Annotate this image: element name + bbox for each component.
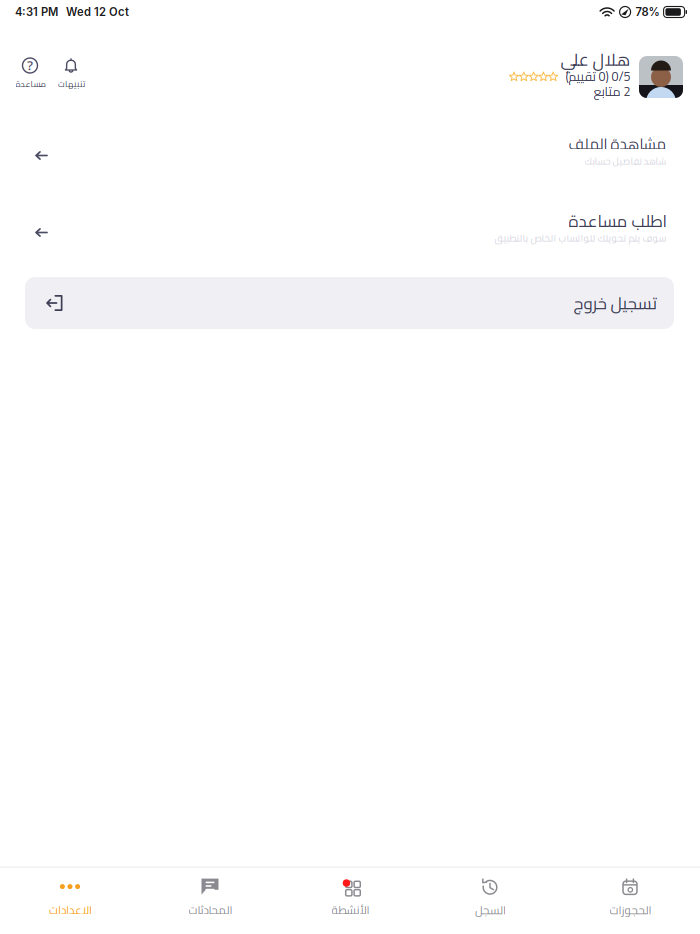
staticText: سوف يتم تحويلك للواتساب الخاص بالتطبيق bbox=[494, 229, 666, 247]
staticText: الاعدادات bbox=[48, 900, 91, 921]
staticText: تسجيل خروج bbox=[573, 287, 657, 319]
staticText: السجل bbox=[474, 900, 505, 921]
staticText: الأنشطة bbox=[331, 900, 369, 921]
button[interactable]: اطلب مساعدة bbox=[0, 212, 700, 256]
staticText: تنبيهات bbox=[57, 76, 84, 92]
button[interactable]: الحجوزات bbox=[560, 868, 700, 929]
button[interactable]: تنبيهات bbox=[54, 58, 88, 92]
button[interactable]: هلال علي bbox=[509, 50, 683, 99]
staticText: Wed 12 Oct bbox=[66, 5, 129, 19]
staticText: هلال علي bbox=[560, 43, 630, 76]
staticText: مساعدة bbox=[15, 76, 45, 92]
staticText: 2 متابع bbox=[593, 80, 630, 103]
staticText: 78% bbox=[636, 5, 660, 19]
staticText: 4:31 PM bbox=[15, 5, 58, 19]
staticText: شاهد تفاصيل حسابك bbox=[584, 152, 666, 170]
staticText: 0/5 (0 تقييم) bbox=[565, 65, 630, 88]
button[interactable]: الاعدادات bbox=[0, 868, 140, 929]
button[interactable]: مشاهدة الملف bbox=[0, 135, 700, 179]
button[interactable]: تسجيل خروج bbox=[25, 277, 674, 329]
button[interactable]: السجل bbox=[420, 868, 560, 929]
staticText: ? bbox=[27, 56, 33, 74]
button[interactable]: مساعدة bbox=[11, 58, 49, 92]
staticText: اطلب مساعدة bbox=[568, 205, 666, 237]
staticText: المحادثات bbox=[188, 900, 232, 921]
staticText: الحجوزات bbox=[609, 900, 651, 921]
button[interactable]: المحادثات bbox=[140, 868, 280, 929]
staticText: مشاهدة الملف bbox=[568, 130, 666, 158]
button[interactable]: الأنشطة bbox=[280, 868, 420, 929]
